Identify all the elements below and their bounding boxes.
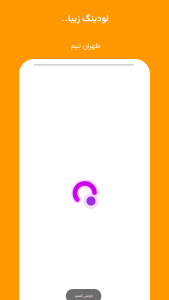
staticText: لودینگ زیبا.. [61, 12, 108, 26]
staticText: خوش آمدید [74, 293, 93, 299]
staticText: طهران تیم [70, 40, 100, 52]
button[interactable]: خوش آمدید [66, 289, 101, 300]
